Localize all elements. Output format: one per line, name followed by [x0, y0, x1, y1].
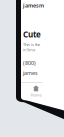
staticText: jamesm [23, 2, 44, 9]
staticText: Cute [23, 29, 41, 40]
staticText: This is the [23, 42, 40, 47]
staticText: (800) [23, 59, 36, 66]
staticText: james [23, 69, 38, 76]
staticText: in Sma [23, 47, 35, 52]
button[interactable]: Home [29, 85, 43, 98]
staticText: Home [30, 92, 41, 98]
